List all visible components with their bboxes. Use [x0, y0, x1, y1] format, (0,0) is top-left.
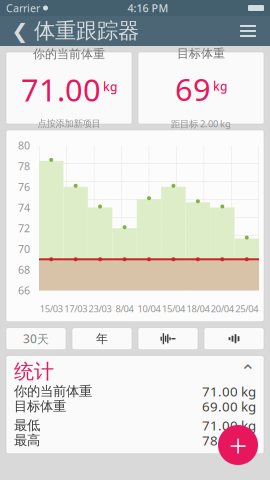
staticText: 71.00 kg [202, 416, 256, 434]
button[interactable]: 30天 [6, 328, 66, 350]
button[interactable]: Line chart [138, 328, 198, 350]
staticText: + [229, 424, 247, 466]
button[interactable]: 目标体重 [138, 52, 264, 124]
staticText: 目标体重 [14, 398, 66, 414]
staticText: 23/03 [89, 302, 112, 315]
staticText: 71.00 kg [202, 382, 256, 400]
button[interactable]: Bar chart [204, 328, 264, 350]
staticText: 最低 [14, 417, 40, 433]
staticText: 你的当前体重 [14, 383, 92, 399]
staticText: 78 [18, 159, 30, 173]
staticText: 统计 [14, 359, 54, 384]
staticText: 最高 [14, 432, 40, 448]
staticText: 17/03 [64, 302, 87, 315]
staticText: 10/04 [137, 302, 160, 315]
button[interactable]: 你的当前体重 [6, 52, 132, 124]
button[interactable]: 年 [72, 328, 132, 350]
staticText: 70 [18, 242, 30, 256]
staticText: 15/03 [40, 302, 63, 315]
staticText: 20/04 [211, 302, 234, 315]
button[interactable]: Menu [232, 16, 264, 46]
staticText: 体重跟踪器 [34, 18, 139, 44]
staticText: 距目标 2.00 kg [171, 117, 231, 130]
staticText: 30天 [23, 331, 49, 347]
staticText: 18/04 [186, 302, 209, 315]
staticText: kg [213, 78, 227, 94]
staticText: 25/04 [235, 302, 258, 315]
button[interactable]: Back [6, 16, 34, 46]
staticText: 点按添加新项目 [37, 118, 100, 129]
staticText: Carrier [6, 1, 40, 15]
staticText: ⌃ [240, 361, 256, 382]
staticText: 4:16 PM [127, 1, 168, 15]
staticText: 72 [18, 221, 30, 235]
staticText: 69 [175, 69, 211, 109]
staticText: 69.00 kg [202, 397, 256, 415]
staticText: 68 [18, 263, 30, 277]
staticText: ❮ [11, 20, 28, 42]
staticText: 8/04 [116, 302, 134, 315]
staticText: 78.50 kg [202, 431, 256, 449]
staticText: 66 [18, 283, 30, 297]
staticText: 76 [18, 180, 30, 194]
button[interactable]: Add weight entry [218, 425, 258, 465]
button[interactable]: Collapse statistics [14, 360, 256, 384]
staticText: 15/04 [162, 302, 185, 315]
staticText: 80 [18, 138, 30, 152]
staticText: 目标体重 [177, 46, 225, 61]
staticText: kg [103, 79, 117, 95]
staticText: 74 [18, 200, 30, 215]
staticText: 71.00 [21, 69, 101, 110]
staticText: 你的当前体重 [33, 46, 105, 61]
staticText: 年 [96, 331, 108, 346]
